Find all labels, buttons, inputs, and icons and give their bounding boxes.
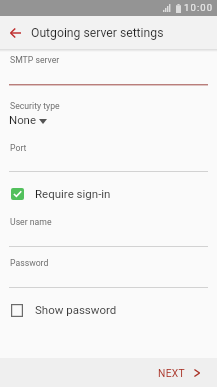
staticText: Password [10, 258, 49, 268]
staticText: NEXT [158, 367, 185, 379]
staticText: Port [10, 143, 27, 153]
staticText: Outgoing server settings [31, 26, 164, 40]
staticText: User name [10, 217, 52, 227]
staticText: SMTP server [10, 55, 60, 65]
staticText: None [9, 113, 36, 126]
staticText: 10:00 [184, 2, 214, 13]
button[interactable]: Back [3, 21, 27, 45]
staticText: Show password [35, 303, 117, 316]
staticText: Security type [10, 101, 60, 111]
button[interactable]: NEXT [144, 361, 217, 385]
button[interactable]: Show password [0, 298, 217, 322]
staticText: Require sign-in [35, 187, 111, 200]
button[interactable]: Require sign-in [0, 182, 217, 206]
